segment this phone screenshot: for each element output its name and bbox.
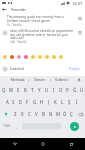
button[interactable]: S [10,96,17,108]
staticText: R [24,87,27,93]
button[interactable]: E [15,84,22,96]
button[interactable]: Merhaba [8,76,28,84]
button[interactable]: Emoji [8,53,15,60]
staticText: The amazing goals are coming from a bril… [7,15,75,22]
button[interactable]: U [43,84,50,96]
button[interactable]: ahse.n04 Bunushoz etkinlik ve paylasimla… [0,29,85,44]
staticText: Yorumlar [11,7,26,12]
button[interactable]: İ [73,96,80,108]
staticText: Ö [63,111,67,117]
staticText: Istanbul [10,66,24,71]
button[interactable]: Ğ [71,84,78,96]
staticText: I [53,87,55,93]
staticText: S [12,99,15,105]
staticText: N [49,111,53,117]
staticText: C [28,111,31,117]
button[interactable]: K [52,96,59,108]
button[interactable]: Ç [68,108,75,120]
button[interactable]: Emoji [22,53,29,60]
button[interactable]: R [22,84,29,96]
staticText: P [66,87,69,93]
button[interactable]: M [54,108,61,120]
staticText: Paylas [69,66,80,71]
button[interactable]: B [40,108,47,120]
staticText: Ü [80,87,84,93]
button[interactable]: F [24,96,31,108]
staticText: Kullanici [55,78,68,82]
staticText: ahse.n04 Bunushoz etkinlik ve paylasimla… [10,29,75,39]
staticText: K [54,99,57,105]
button[interactable]: Ş [66,96,73,108]
button[interactable]: Emoji [43,53,50,60]
button[interactable]: T [29,84,36,96]
button[interactable]: C [26,108,33,120]
button[interactable]: Voice input [72,76,85,84]
staticText: L [61,99,64,105]
button[interactable]: Backspace [75,108,85,120]
button[interactable]: Z [11,108,19,120]
button[interactable]: L [59,96,66,108]
button[interactable]: Back [0,138,29,150]
staticText: Ğ [73,87,77,93]
staticText: T [31,87,34,93]
button[interactable]: Emoji [36,53,43,60]
button[interactable]: D [17,96,24,108]
staticText: İ [76,99,78,105]
button[interactable]: Shift [0,108,11,120]
button[interactable]: ?123 [0,120,13,132]
button[interactable]: N [47,108,54,120]
button[interactable]: Emoji [1,53,8,60]
staticText: O [59,87,63,93]
staticText: , [16,124,18,129]
staticText: W [9,87,14,93]
staticText: X [21,111,24,117]
button[interactable]: Like [75,29,85,37]
staticText: F [26,99,29,105]
staticText: E [17,87,20,93]
button[interactable]: I [50,84,57,96]
staticText: Merhaba [11,78,25,82]
button[interactable]: W [8,84,15,96]
staticText: Y [38,87,41,93]
staticText: Tamam [34,78,46,82]
staticText: 14:07 [72,1,83,6]
staticText: ?123 [3,124,10,128]
button[interactable]: X [19,108,26,120]
staticText: V [35,111,38,117]
button[interactable]: Emoji [57,53,64,60]
button[interactable]: A [4,96,10,108]
button[interactable]: Recents [57,138,85,150]
button[interactable]: , [13,120,21,132]
button[interactable]: Paylas [67,61,82,76]
button[interactable]: Tamam [29,76,50,84]
button[interactable]: H [38,96,45,108]
button[interactable]: V [33,108,40,120]
button[interactable]: Ö [61,108,68,120]
button[interactable]: Home [29,138,57,150]
button[interactable]: Istanbul [10,61,67,76]
button[interactable]: The amazing goals are coming from a bril… [0,15,85,27]
staticText: 2dk Yanitla [10,40,27,44]
button[interactable]: Emoji [50,53,57,60]
button[interactable]: P [64,84,71,96]
staticText: U [45,87,49,93]
button[interactable]: Kullanici [51,76,72,84]
staticText: Q [2,87,6,93]
button[interactable]: Y [36,84,43,96]
button[interactable]: Ü [78,84,85,96]
staticText: 5s Yanitla [7,23,22,27]
staticText: . [65,124,67,129]
button[interactable]: Send [70,120,85,132]
button[interactable]: Emoji [15,53,22,60]
button[interactable]: Back [0,6,8,13]
staticText: B [42,111,45,117]
button[interactable]: Q [0,84,8,96]
staticText: Z [14,111,17,117]
button[interactable]: G [31,96,38,108]
button[interactable]: Emoji [29,53,36,60]
button[interactable]: O [57,84,64,96]
button[interactable]: J [45,96,52,108]
button[interactable]: Like [75,15,85,23]
